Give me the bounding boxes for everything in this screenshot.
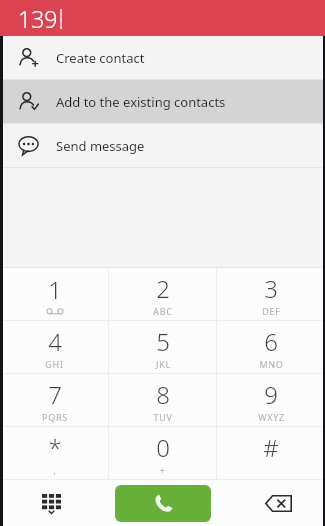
button[interactable]: #: [217, 427, 325, 479]
staticText: GHI: [45, 358, 64, 370]
button[interactable]: 8: [109, 374, 217, 426]
button[interactable]: 7: [0, 374, 109, 426]
staticText: JKL: [156, 358, 171, 370]
button[interactable]: 1: [0, 268, 109, 320]
staticText: DEF: [262, 305, 281, 317]
staticText: 7: [48, 378, 62, 411]
staticText: 2: [156, 272, 170, 305]
staticText: TUV: [153, 411, 173, 423]
staticText: 5: [156, 325, 170, 358]
button[interactable]: 9: [217, 374, 325, 426]
staticText: 139: [18, 3, 58, 34]
staticText: 6: [264, 325, 278, 358]
button[interactable]: Backspace: [257, 482, 299, 524]
staticText: 4: [48, 325, 62, 358]
button[interactable]: 5: [109, 321, 217, 373]
staticText: PQRS: [42, 411, 68, 423]
button[interactable]: Send message: [0, 124, 325, 167]
button[interactable]: 2: [109, 268, 217, 320]
staticText: MNO: [259, 358, 284, 370]
button[interactable]: 4: [0, 321, 109, 373]
staticText: *: [48, 431, 62, 464]
staticText: +: [160, 464, 166, 476]
staticText: 0: [156, 431, 170, 464]
staticText: 3: [264, 272, 278, 305]
button[interactable]: Add to the existing contacts: [0, 80, 325, 123]
button[interactable]: 3: [217, 268, 325, 320]
button[interactable]: 6: [217, 321, 325, 373]
button[interactable]: *: [0, 427, 109, 479]
staticText: ABC: [153, 305, 173, 317]
button[interactable]: Call: [115, 485, 211, 522]
staticText: #: [263, 431, 279, 464]
staticText: ,: [53, 464, 57, 476]
staticText: Add to the existing contacts: [56, 93, 226, 111]
staticText: Create contact: [56, 49, 145, 67]
staticText: 9: [264, 378, 278, 411]
button[interactable]: 0: [109, 427, 217, 479]
staticText: 8: [156, 378, 170, 411]
staticText: WXYZ: [258, 411, 285, 423]
button[interactable]: Hide dialpad: [32, 484, 70, 522]
staticText: Send message: [56, 137, 145, 155]
button[interactable]: Create contact: [0, 36, 325, 79]
staticText: 1: [48, 273, 62, 306]
